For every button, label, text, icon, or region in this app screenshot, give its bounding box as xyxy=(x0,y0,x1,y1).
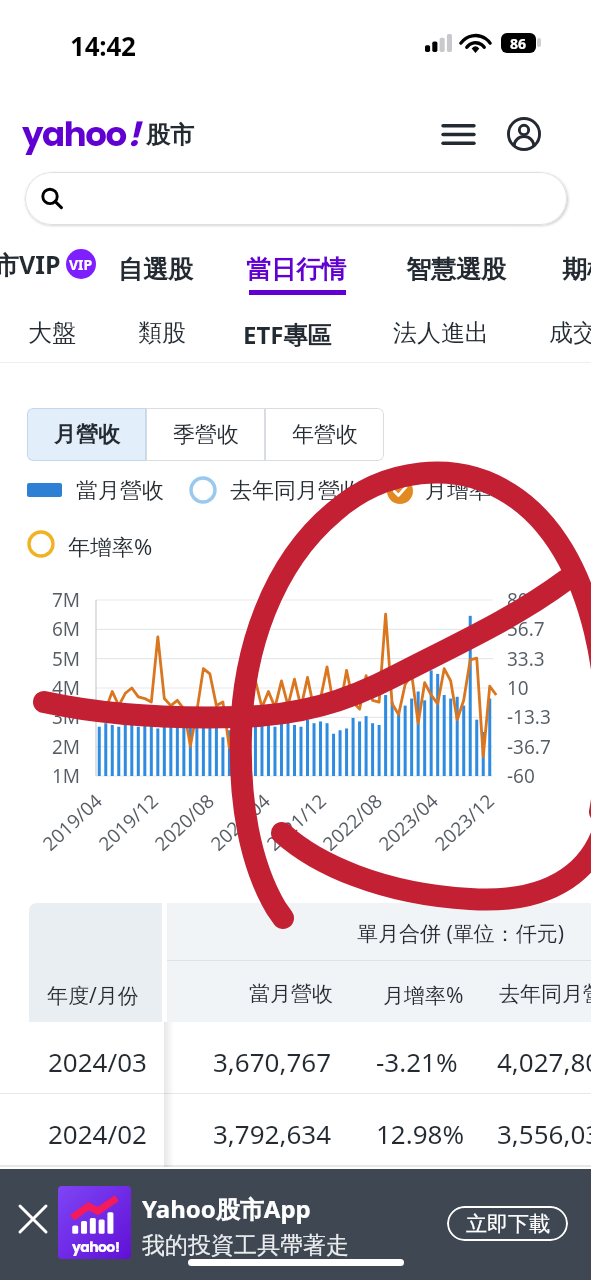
staticText: 7M xyxy=(30,587,80,613)
staticText: 86 xyxy=(510,34,527,53)
staticText: 去年同月營 xyxy=(499,981,591,1007)
staticText: 月營收 xyxy=(54,421,120,449)
button[interactable]: Search xyxy=(25,172,567,225)
staticText: 1M xyxy=(30,763,80,789)
button[interactable]: 月營收 xyxy=(27,408,146,461)
staticText: 當月營收 xyxy=(249,981,333,1007)
staticText: 2M xyxy=(30,734,80,760)
button[interactable]: 大盤 xyxy=(28,318,76,348)
button[interactable]: ETF專區 xyxy=(243,318,332,351)
staticText: 2022/08 xyxy=(317,788,388,856)
staticText: 月增率 xyxy=(425,477,491,505)
staticText: Yahoo股市App xyxy=(142,1192,311,1225)
button[interactable]: 季營收 xyxy=(146,408,265,461)
staticText: 2019/12 xyxy=(93,788,164,856)
staticText: 2023/12 xyxy=(429,788,500,856)
staticText: yahoo xyxy=(22,110,126,158)
staticText: 2019/04 xyxy=(37,788,108,856)
staticText: 2023/04 xyxy=(373,788,444,856)
staticText: 季營收 xyxy=(173,421,239,449)
staticText: 年營收 xyxy=(292,421,358,449)
staticText: 2020/04 xyxy=(205,788,276,856)
button[interactable]: 年營收 xyxy=(265,408,384,461)
staticText: 2024/02 xyxy=(48,1116,147,1151)
button[interactable]: 當日行情 xyxy=(246,254,346,285)
staticText: 當月營收 xyxy=(76,477,164,505)
button[interactable]: 市VIP xyxy=(0,247,96,281)
staticText: 智慧選股 xyxy=(406,254,506,285)
staticText: 33.3 xyxy=(507,646,545,672)
staticText: 4,027,80 xyxy=(497,1044,591,1079)
staticText: 2024/03 xyxy=(48,1044,147,1079)
button[interactable]: 2024/02 xyxy=(0,1094,591,1166)
button[interactable]: 類股 xyxy=(138,318,186,348)
staticText: 成交 xyxy=(549,318,591,348)
staticText: 期權 xyxy=(562,254,591,285)
staticText: 80 xyxy=(507,587,529,613)
staticText: 類股 xyxy=(138,318,186,348)
button[interactable]: 法人進出 xyxy=(393,318,489,348)
staticText: 當日行情 xyxy=(246,254,346,285)
staticText: 去年同月營收 xyxy=(230,477,362,505)
staticText: 自選股 xyxy=(118,254,193,285)
button[interactable]: Account xyxy=(501,96,547,172)
staticText: 3,670,767 xyxy=(213,1044,332,1079)
button[interactable]: 成交 xyxy=(549,318,591,348)
staticText: yahoo! xyxy=(72,1237,120,1257)
staticText: 6M xyxy=(30,616,80,642)
staticText: 14:42 xyxy=(70,28,136,63)
staticText: 3M xyxy=(30,704,80,730)
staticText: 4M xyxy=(30,675,80,701)
button[interactable]: 自選股 xyxy=(118,254,193,285)
button[interactable]: 立即下載 xyxy=(447,1206,568,1241)
staticText: 3,792,634 xyxy=(213,1116,332,1151)
staticText: 2020/08 xyxy=(149,788,220,856)
staticText: -60 xyxy=(507,763,535,789)
staticText: ! xyxy=(127,110,141,158)
staticText: 立即下載 xyxy=(466,1211,550,1237)
button[interactable]: Menu xyxy=(435,96,481,172)
staticText: -36.7 xyxy=(507,734,551,760)
staticText: VIP xyxy=(69,255,93,274)
staticText: 56.7 xyxy=(507,616,545,642)
button[interactable]: 智慧選股 xyxy=(406,254,506,285)
staticText: 我的投資工具帶著走 xyxy=(142,1231,349,1260)
staticText: 10 xyxy=(507,675,529,701)
staticText: ETF專區 xyxy=(243,318,332,351)
staticText: 法人進出 xyxy=(393,318,489,348)
staticText: 市VIP xyxy=(0,247,61,281)
staticText: 年度/月份 xyxy=(47,981,139,1010)
staticText: 月增率% xyxy=(383,981,464,1010)
staticText: 股市 xyxy=(146,120,194,150)
button[interactable]: 期權 xyxy=(562,254,591,285)
staticText: -13.3 xyxy=(507,704,551,730)
staticText: 5M xyxy=(30,646,80,672)
button[interactable]: 2024/03 xyxy=(0,1022,591,1094)
staticText: 12.98% xyxy=(376,1116,465,1151)
staticText: 年增率% xyxy=(68,531,153,561)
staticText: 2021/12 xyxy=(261,788,332,856)
staticText: 3,556,03 xyxy=(497,1116,591,1151)
staticText: 單月合併 (單位：仟元) xyxy=(357,919,565,948)
staticText: -3.21% xyxy=(376,1044,458,1079)
button[interactable]: Close xyxy=(4,1169,62,1269)
staticText: 大盤 xyxy=(28,318,76,348)
